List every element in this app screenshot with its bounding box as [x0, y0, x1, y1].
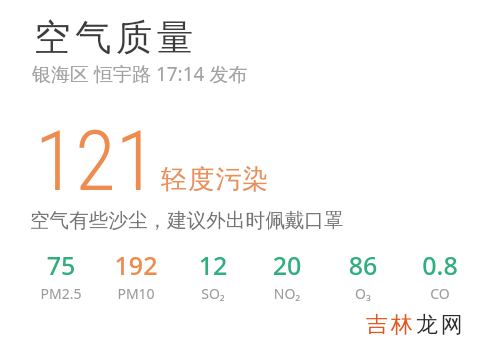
staticText: 75 [23, 248, 99, 282]
button[interactable]: 192 [98, 248, 174, 306]
staticText: 12 [175, 248, 251, 282]
staticText: CO [402, 284, 478, 303]
staticText: NO₂ [249, 284, 325, 303]
button[interactable]: 0.8 [402, 248, 478, 306]
other: 吉林龙网 [366, 311, 466, 339]
staticText: 121 [35, 113, 156, 210]
staticText: 银海区 恒宇路 17:14 发布 [32, 61, 248, 87]
staticText: PM10 [98, 284, 174, 303]
button[interactable]: 121 [28, 110, 358, 238]
button[interactable]: 空气质量 [30, 10, 260, 90]
staticText: 吉林 [366, 311, 416, 339]
staticText: 空气有些沙尘，建议外出时佩戴口罩 [30, 208, 344, 233]
button[interactable]: 86 [325, 248, 401, 306]
staticText: 86 [325, 248, 401, 282]
staticText: PM2.5 [23, 284, 99, 303]
button[interactable]: 12 [175, 248, 251, 306]
staticText: 192 [98, 248, 174, 282]
staticText: O₃ [325, 284, 401, 303]
button[interactable]: 75 [23, 248, 99, 306]
staticText: 龙网 [416, 311, 466, 339]
staticText: 空气质量 [34, 15, 198, 61]
staticText: 轻度污染 [161, 163, 270, 196]
staticText: SO₂ [175, 284, 251, 303]
staticText: 20 [249, 248, 325, 282]
button[interactable]: 20 [249, 248, 325, 306]
staticText: 0.8 [402, 248, 478, 282]
